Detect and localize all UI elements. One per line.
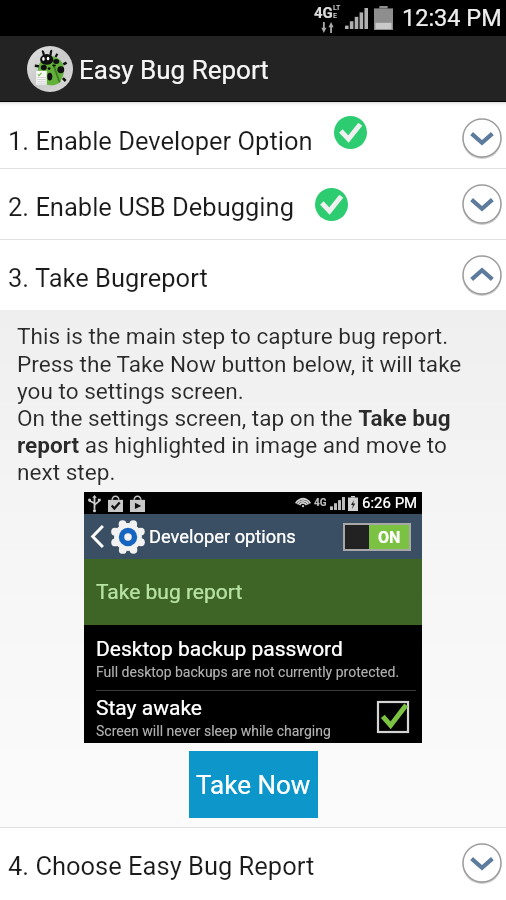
staticText: 4G (314, 497, 327, 509)
staticText: LTE (333, 4, 342, 20)
button[interactable]: ON (345, 525, 409, 549)
staticText: Full desktop backups are not currently p… (96, 664, 400, 680)
button[interactable]: Expand section (459, 181, 505, 227)
staticText: Take Now (196, 770, 311, 800)
button[interactable]: 4. Choose Easy Bug Report (0, 828, 506, 898)
staticText: 2. Enable USB Debugging (8, 192, 294, 222)
button[interactable]: Expand section (459, 115, 505, 161)
staticText: Screen will never sleep while charging (96, 723, 331, 739)
staticText: 6:26 PM (362, 494, 418, 512)
button[interactable]: Take Now (189, 751, 318, 818)
staticText: Take bug report (96, 580, 243, 605)
button[interactable]: Collapse section (459, 252, 505, 298)
staticText: 1. Enable Developer Option (8, 126, 313, 156)
staticText: Easy Bug Report (79, 55, 269, 85)
staticText: 3. Take Bugreport (8, 263, 208, 293)
staticText: 4G (314, 4, 333, 22)
staticText: Desktop backup password (96, 637, 343, 662)
staticText: Stay awake (96, 696, 202, 721)
staticText: 12:34 PM (402, 4, 502, 32)
staticText: Developer options (149, 526, 296, 547)
button[interactable]: 2. Enable USB Debugging (0, 169, 506, 239)
staticText: ON (378, 528, 401, 547)
staticText: This is the main step to capture bug rep… (17, 323, 472, 485)
button[interactable]: 1. Enable Developer Option (0, 107, 506, 168)
button[interactable]: Expand section (459, 840, 505, 886)
staticText: 4. Choose Easy Bug Report (8, 851, 315, 881)
button[interactable]: 3. Take Bugreport (0, 240, 506, 310)
